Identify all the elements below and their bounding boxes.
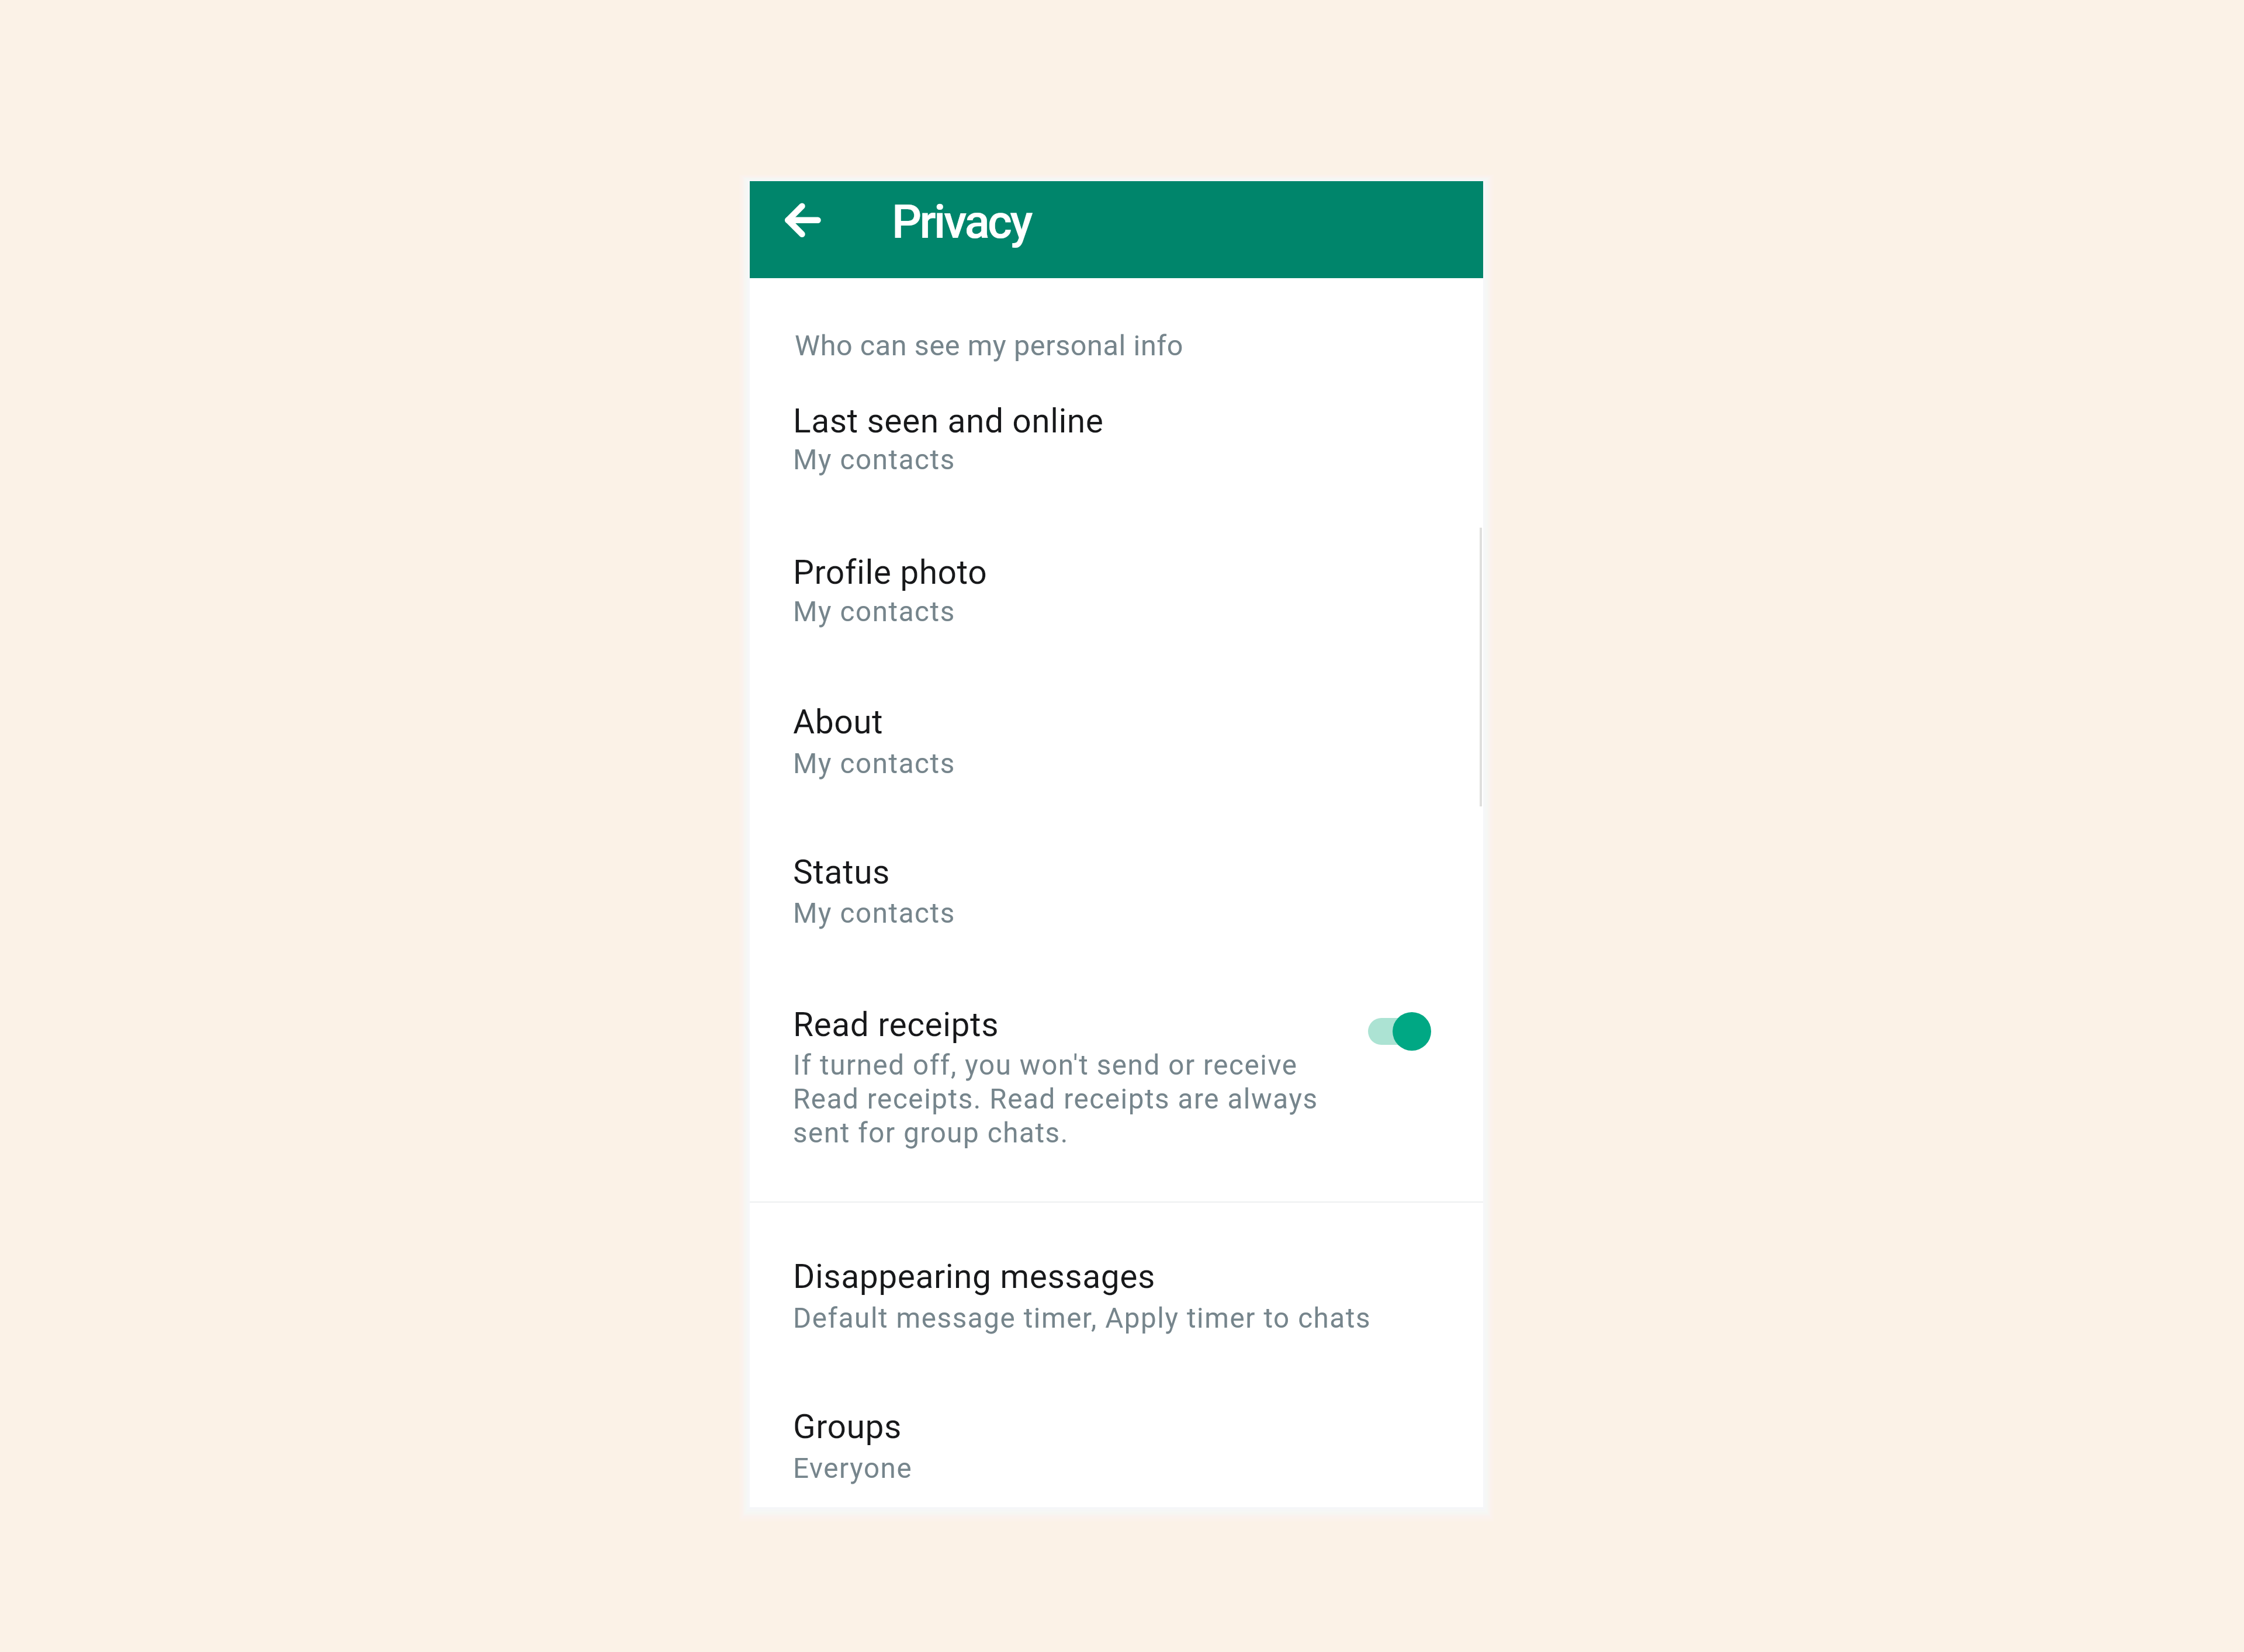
staticText: My contacts	[793, 897, 955, 930]
button[interactable]: About	[750, 676, 1483, 826]
staticText: Last seen and online	[793, 401, 1104, 441]
staticText: Read receipts	[793, 1005, 999, 1044]
staticText: About	[793, 702, 884, 742]
staticText: My contacts	[793, 747, 955, 780]
staticText: Default message timer, Apply timer to ch…	[793, 1302, 1372, 1335]
staticText: Disappearing messages	[793, 1257, 1155, 1296]
button[interactable]: Read receipts toggle	[1362, 1008, 1450, 1058]
button[interactable]: Last seen and online	[750, 374, 1483, 525]
button[interactable]: Groups	[750, 1378, 1483, 1507]
button[interactable]: Profile photo	[750, 525, 1483, 676]
staticText: If turned off, you won't send or receive…	[793, 1049, 1318, 1149]
staticText: My contacts	[793, 595, 955, 628]
button[interactable]: Disappearing messages	[750, 1227, 1483, 1378]
staticText: Status	[793, 853, 890, 892]
staticText: Everyone	[793, 1452, 913, 1485]
staticText: Who can see my personal info	[795, 329, 1183, 362]
staticText: Profile photo	[793, 553, 988, 592]
staticText: Privacy	[892, 195, 1031, 250]
staticText: My contacts	[793, 444, 955, 476]
staticText: Groups	[793, 1407, 902, 1446]
button[interactable]: Read receipts	[750, 977, 1483, 1199]
button[interactable]: Status	[750, 826, 1483, 977]
button[interactable]: Back	[765, 182, 840, 257]
